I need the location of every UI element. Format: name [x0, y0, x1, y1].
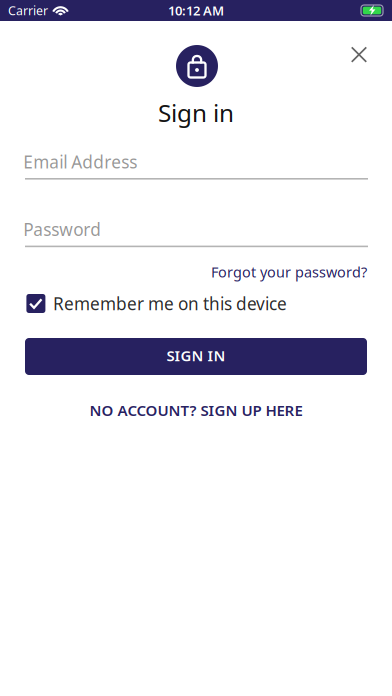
staticText: Forgot your password?	[211, 262, 367, 282]
staticText: SIGN IN	[166, 345, 225, 366]
staticText: Sign in	[158, 96, 234, 129]
button[interactable]: SIGN IN	[25, 338, 367, 375]
button[interactable]: NO ACCOUNT? SIGN UP HERE	[89, 396, 302, 424]
staticText: NO ACCOUNT? SIGN UP HERE	[89, 400, 302, 420]
button[interactable]: Remember me on this device	[26, 294, 368, 313]
staticText: Carrier	[8, 2, 48, 19]
staticText: Password	[23, 218, 101, 241]
staticText: Email Address	[23, 150, 137, 173]
staticText: 10:12 AM	[168, 2, 224, 19]
button[interactable]: Forgot your password?	[211, 259, 367, 285]
staticText: Remember me on this device	[53, 292, 287, 315]
button[interactable]: Close	[342, 38, 376, 72]
